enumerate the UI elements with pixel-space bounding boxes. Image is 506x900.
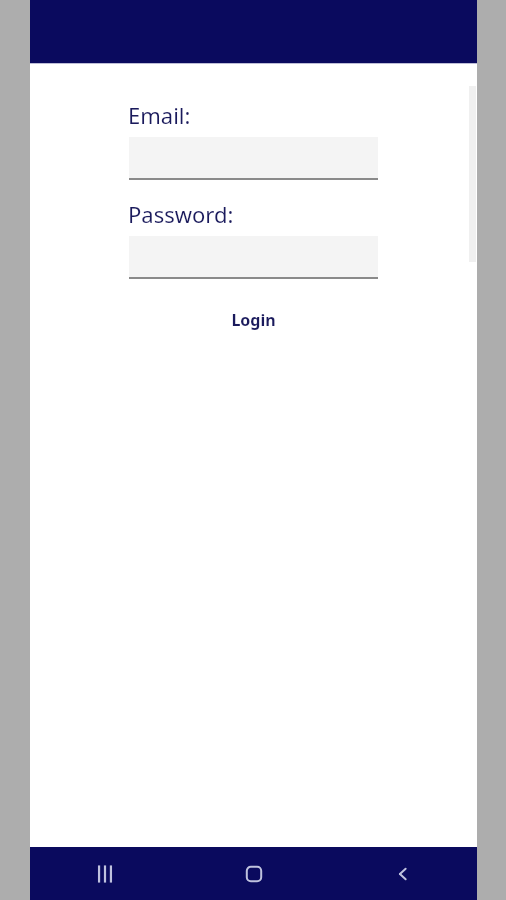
button[interactable]: Login <box>30 309 477 331</box>
staticText: Email: <box>128 100 191 130</box>
button[interactable]: Recent apps <box>30 847 179 900</box>
button[interactable]: Home <box>179 847 328 900</box>
button[interactable]: Back <box>328 847 477 900</box>
button[interactable] <box>129 137 378 180</box>
staticText: Password: <box>128 199 234 229</box>
staticText: Login <box>231 309 276 331</box>
button[interactable] <box>129 236 378 279</box>
